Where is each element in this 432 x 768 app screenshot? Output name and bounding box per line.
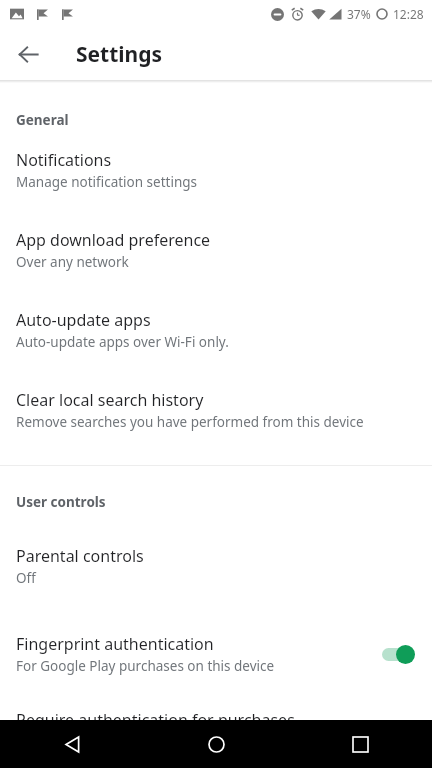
staticText: Manage notification settings — [16, 173, 198, 191]
staticText: Notifications — [16, 149, 112, 171]
button[interactable]: Recent apps — [288, 720, 432, 768]
staticText: Settings — [76, 40, 163, 69]
button[interactable]: Fingerprint authentication — [0, 621, 432, 687]
staticText: Over any network — [16, 253, 129, 271]
staticText: Parental controls — [16, 545, 144, 567]
button[interactable]: Clear local search history — [0, 377, 432, 443]
staticText: Auto-update apps over Wi-Fi only. — [16, 333, 229, 351]
staticText: Remove searches you have performed from … — [16, 413, 364, 431]
staticText: For Google Play purchases on this device — [16, 657, 275, 675]
staticText: 37% — [347, 6, 371, 22]
staticText: General — [16, 111, 69, 129]
button[interactable]: Back — [0, 720, 144, 768]
button[interactable]: Auto-update apps — [0, 297, 432, 363]
staticText: User controls — [16, 493, 106, 511]
staticText: 12:28 — [393, 6, 424, 22]
staticText: Off — [16, 569, 36, 587]
button[interactable]: App download preference — [0, 217, 432, 283]
staticText: Require authentication for purchases — [16, 709, 295, 731]
staticText: Fingerprint authentication — [16, 633, 214, 655]
button[interactable]: Home — [144, 720, 288, 768]
button[interactable]: Parental controls — [0, 533, 432, 599]
button[interactable]: Back — [8, 34, 48, 74]
button[interactable]: Toggle fingerprint authentication — [380, 643, 416, 665]
button[interactable]: Notifications — [0, 137, 432, 203]
staticText: Clear local search history — [16, 389, 204, 411]
staticText: Auto-update apps — [16, 309, 151, 331]
staticText: App download preference — [16, 229, 211, 251]
